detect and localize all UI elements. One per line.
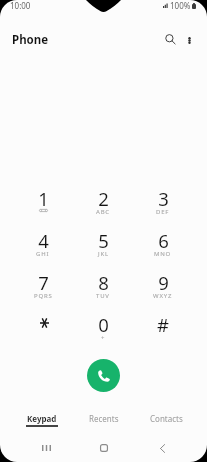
staticText: 3 xyxy=(158,186,169,211)
staticText: 10:00 xyxy=(10,0,31,11)
staticText: Phone xyxy=(12,32,49,48)
staticText: TUV xyxy=(96,292,110,300)
button[interactable]: 3 xyxy=(133,175,193,217)
button[interactable] xyxy=(13,301,73,343)
staticText: DEF xyxy=(156,208,170,216)
button[interactable]: Recents xyxy=(73,413,135,435)
button[interactable]: More options xyxy=(177,28,201,52)
staticText: 0 xyxy=(98,312,109,337)
button[interactable]: Back xyxy=(133,436,191,460)
button[interactable]: 5 xyxy=(73,217,133,259)
staticText: Keypad xyxy=(27,413,57,424)
button[interactable]: 0 xyxy=(73,301,133,343)
staticText: 1 xyxy=(38,186,49,211)
button[interactable]: 4 xyxy=(13,217,73,259)
staticText: PQRS xyxy=(34,292,53,300)
button[interactable]: 7 xyxy=(13,259,73,301)
button[interactable]: Search xyxy=(158,28,182,52)
staticText: ABC xyxy=(96,208,110,216)
staticText: MNO xyxy=(154,250,172,258)
button[interactable]: Keypad xyxy=(10,413,73,435)
button[interactable]: Recent apps xyxy=(17,436,75,460)
button[interactable]: 6 xyxy=(133,217,193,259)
staticText: 7 xyxy=(38,270,49,295)
button[interactable]: Contacts xyxy=(135,413,197,435)
button[interactable]: 2 xyxy=(73,175,133,217)
button[interactable]: 8 xyxy=(73,259,133,301)
button[interactable]: 1 xyxy=(13,175,73,217)
staticText: 4 xyxy=(38,228,49,253)
staticText: WXYZ xyxy=(153,292,173,300)
staticText: + xyxy=(101,334,106,342)
staticText: 6 xyxy=(158,228,169,253)
staticText: 8 xyxy=(98,270,109,295)
staticText: 9 xyxy=(158,270,169,295)
staticText: 5 xyxy=(98,228,109,253)
staticText: GHI xyxy=(36,250,50,258)
staticText: JKL xyxy=(98,250,109,258)
staticText: 2 xyxy=(98,186,109,211)
button[interactable]: Home xyxy=(75,436,133,460)
button[interactable]: Call xyxy=(87,359,120,392)
staticText: 100% xyxy=(170,0,191,11)
staticText: # xyxy=(157,312,169,337)
button[interactable]: # xyxy=(133,301,193,343)
staticText: Recents xyxy=(89,413,119,424)
button[interactable]: 9 xyxy=(133,259,193,301)
staticText: Contacts xyxy=(150,413,183,424)
